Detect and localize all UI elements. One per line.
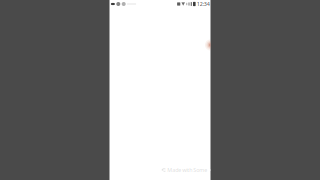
staticText: 12:34 (197, 0, 210, 8)
staticText: Made with Some (167, 166, 207, 174)
